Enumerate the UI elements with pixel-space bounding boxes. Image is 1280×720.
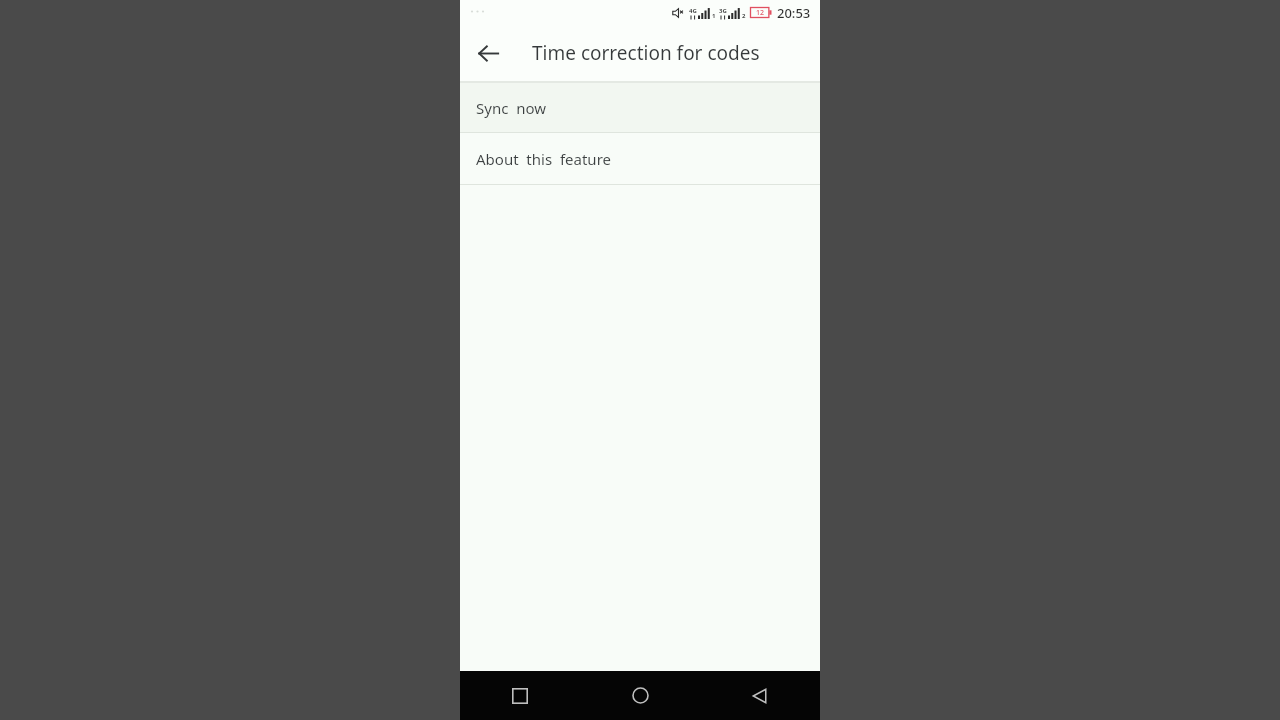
staticText: 1: [712, 12, 716, 20]
staticText: 4G: [689, 7, 697, 15]
button[interactable]: Recent apps: [460, 671, 580, 720]
staticText: 20:53: [777, 4, 811, 22]
staticText: 3G: [719, 7, 727, 15]
button[interactable]: Sync now: [460, 83, 820, 132]
button[interactable]: Back: [700, 671, 820, 720]
button[interactable]: Home: [580, 671, 700, 720]
staticText: Time correction for codes: [532, 40, 760, 66]
staticText: 2: [742, 12, 746, 20]
button[interactable]: Back: [472, 37, 504, 69]
staticText: Sync now: [476, 98, 546, 118]
button[interactable]: About this feature: [460, 133, 820, 184]
staticText: 12: [756, 8, 765, 18]
staticText: About this feature: [476, 149, 611, 169]
